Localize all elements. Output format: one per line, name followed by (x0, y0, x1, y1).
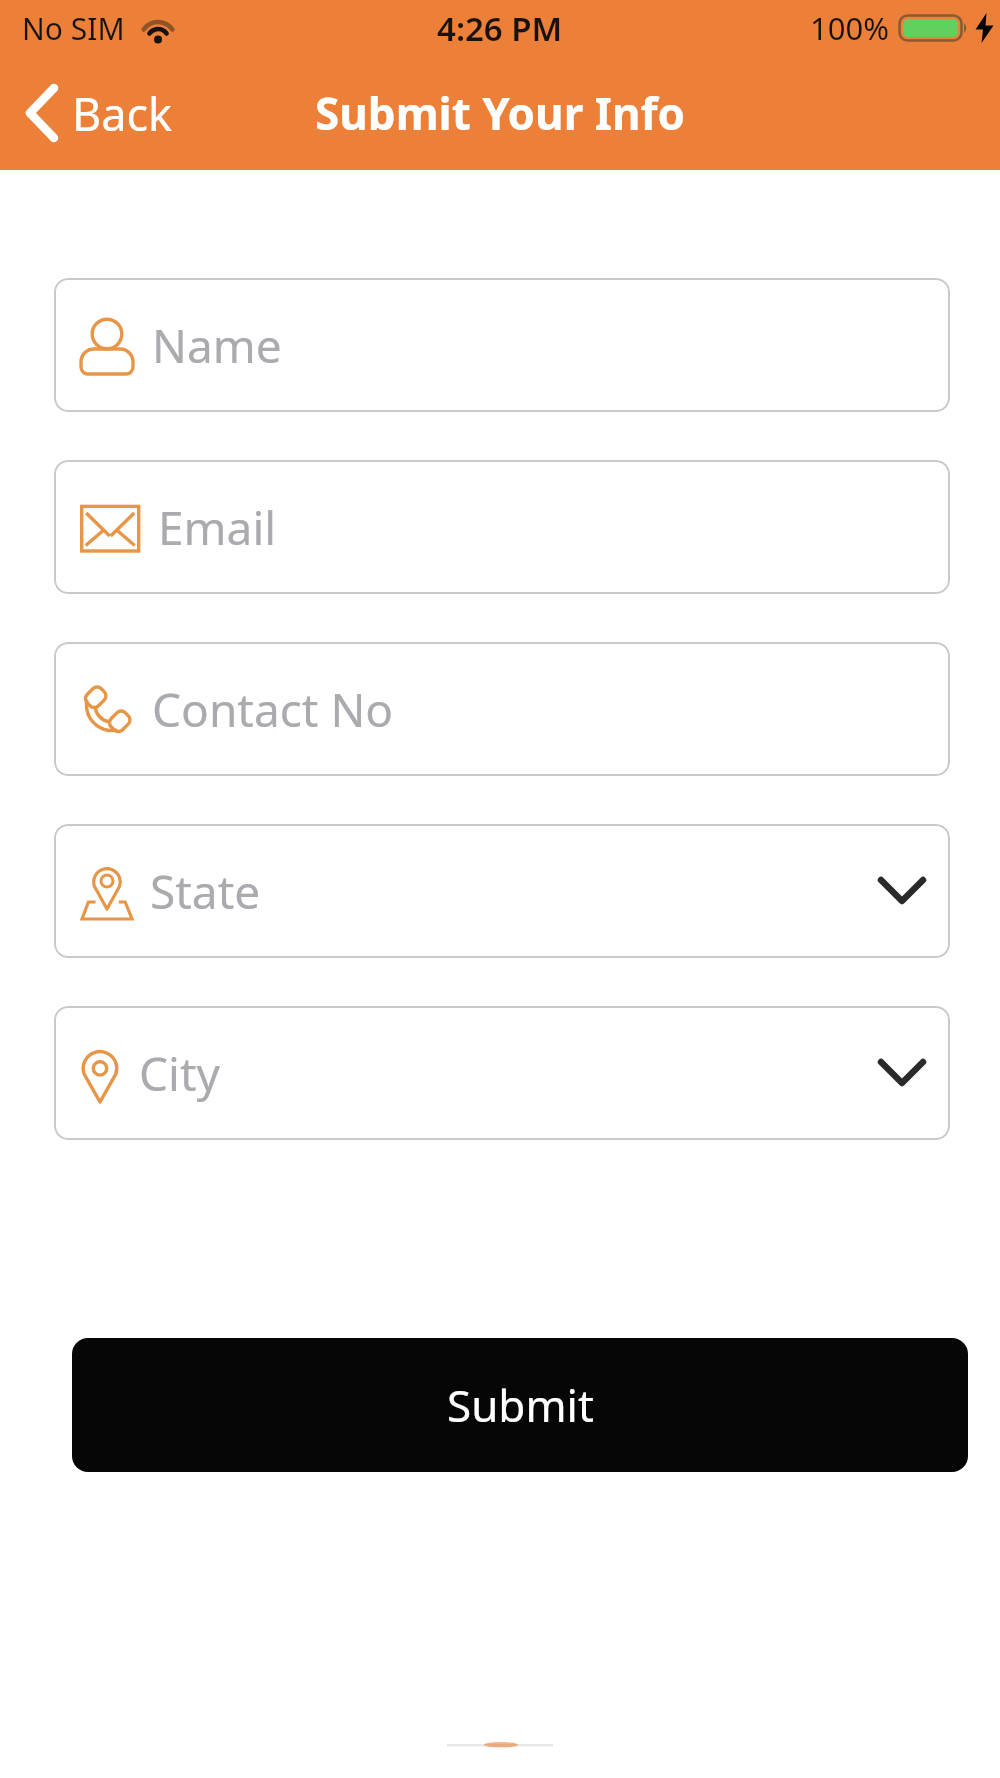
staticText: No SIM (22, 8, 125, 49)
staticText: Back (72, 83, 173, 144)
staticText: Submit (447, 1375, 594, 1435)
button[interactable]: Name (54, 278, 950, 412)
staticText: State (150, 860, 261, 923)
button[interactable]: Back (24, 83, 173, 144)
button[interactable]: City (54, 1006, 950, 1140)
staticText: City (139, 1042, 221, 1105)
button[interactable]: Submit (72, 1338, 968, 1472)
staticText: Contact No (152, 678, 394, 741)
staticText: 4:26 PM (437, 6, 563, 51)
staticText: Submit Your Info (315, 83, 686, 143)
button[interactable]: Contact No (54, 642, 950, 776)
button[interactable]: State (54, 824, 950, 958)
staticText: Email (158, 496, 277, 559)
button[interactable]: Email (54, 460, 950, 594)
staticText: Name (152, 314, 282, 377)
staticText: 100% (810, 7, 889, 49)
